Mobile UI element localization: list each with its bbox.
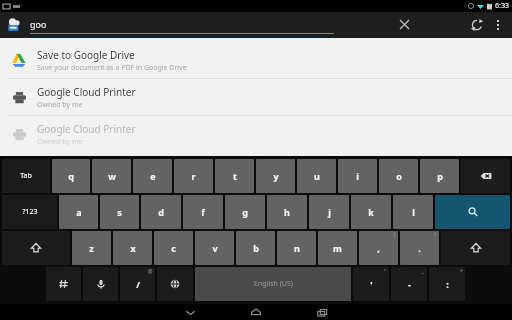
button[interactable]: ,	[359, 231, 398, 265]
button[interactable]: i	[338, 159, 377, 193]
staticText: d	[158, 206, 164, 218]
button[interactable]: e	[133, 159, 172, 193]
button[interactable]: n	[277, 231, 316, 265]
staticText: m	[333, 242, 342, 254]
button[interactable]: Shift	[2, 231, 70, 265]
button[interactable]: h	[267, 195, 307, 229]
button[interactable]: k	[351, 195, 391, 229]
button[interactable]: q	[52, 159, 90, 193]
button[interactable]: s	[100, 195, 139, 229]
button[interactable]: ?123	[2, 195, 57, 229]
staticText: Owned by me	[37, 137, 83, 147]
staticText: f	[201, 206, 205, 218]
button[interactable]: j	[309, 195, 349, 229]
button[interactable]: z	[72, 231, 111, 265]
button[interactable]: m	[318, 231, 357, 265]
staticText: ?	[434, 232, 437, 239]
staticText: +	[460, 268, 463, 275]
button[interactable]: t	[215, 159, 254, 193]
button[interactable]: u	[297, 159, 336, 193]
button[interactable]: Recent apps	[310, 304, 334, 320]
button[interactable]: Search	[435, 195, 510, 229]
staticText: _	[422, 268, 425, 275]
button[interactable]: w	[92, 159, 131, 193]
button[interactable]: Settings	[46, 267, 81, 301]
button[interactable]: r	[174, 159, 213, 193]
staticText: English (US)	[254, 279, 293, 289]
staticText: l	[412, 206, 415, 218]
button[interactable]: Google Cloud Printer	[0, 116, 512, 152]
button[interactable]: x	[113, 231, 152, 265]
staticText: Tab	[20, 171, 32, 181]
staticText: -	[408, 278, 411, 290]
staticText: n	[294, 242, 300, 254]
staticText: p	[437, 170, 443, 182]
staticText: j	[328, 206, 331, 218]
staticText: ,	[377, 242, 380, 254]
button[interactable]: English (US)	[195, 267, 351, 301]
staticText: y	[273, 170, 279, 182]
button[interactable]: Cloud Print	[2, 13, 26, 37]
staticText: c	[171, 242, 176, 254]
staticText: a	[76, 206, 82, 218]
staticText: :	[446, 278, 449, 290]
staticText: i	[356, 170, 359, 182]
staticText: Owned by me	[37, 100, 83, 110]
button[interactable]: Clear	[396, 16, 412, 32]
staticText: o	[396, 170, 402, 182]
staticText: e	[150, 170, 156, 182]
staticText: z	[89, 242, 94, 254]
staticText: Save your document as a PDF in Google Dr…	[37, 63, 187, 73]
staticText: @	[148, 268, 153, 275]
button[interactable]: Save to Google Drive	[0, 42, 512, 78]
button[interactable]: /	[120, 267, 155, 301]
staticText: 6:33	[495, 1, 509, 11]
staticText: Google Cloud Printer	[37, 122, 136, 136]
staticText: b	[253, 242, 259, 254]
button[interactable]: Refresh	[466, 14, 488, 36]
button[interactable]: y	[256, 159, 295, 193]
staticText: !	[394, 232, 396, 239]
button[interactable]: c	[154, 231, 193, 265]
staticText: u	[314, 170, 320, 182]
staticText: k	[368, 206, 374, 218]
staticText: /	[136, 278, 140, 290]
button[interactable]: l	[393, 195, 433, 229]
staticText: w	[108, 170, 116, 182]
button[interactable]: Shift	[441, 231, 510, 265]
staticText: r	[191, 170, 196, 182]
button[interactable]: Back	[178, 304, 202, 320]
button[interactable]: -	[391, 267, 427, 301]
button[interactable]: .	[400, 231, 439, 265]
staticText: t	[233, 170, 237, 182]
button[interactable]: Home	[244, 304, 268, 320]
staticText: q	[68, 170, 74, 182]
staticText: goo	[30, 18, 396, 30]
staticText: '	[370, 278, 373, 290]
button[interactable]: o	[379, 159, 418, 193]
button[interactable]: Google Cloud Printer	[0, 79, 512, 115]
button[interactable]: d	[141, 195, 181, 229]
staticText: h	[284, 206, 290, 218]
button[interactable]: :	[429, 267, 465, 301]
staticText: x	[130, 242, 136, 254]
button[interactable]: g	[225, 195, 265, 229]
staticText: "	[384, 268, 387, 275]
button[interactable]: Backspace	[461, 159, 510, 193]
button[interactable]: v	[195, 231, 234, 265]
staticText: s	[117, 206, 122, 218]
staticText: ?123	[22, 207, 38, 217]
button[interactable]: '	[353, 267, 389, 301]
button[interactable]: a	[59, 195, 98, 229]
staticText: g	[242, 206, 248, 218]
button[interactable]: Voice input	[83, 267, 118, 301]
button[interactable]: Tab	[2, 159, 50, 193]
button[interactable]: More options	[488, 15, 508, 35]
staticText: Save to Google Drive	[37, 48, 135, 62]
staticText: Google Cloud Printer	[37, 85, 136, 99]
staticText: v	[212, 242, 218, 254]
button[interactable]: f	[183, 195, 223, 229]
button[interactable]: b	[236, 231, 275, 265]
button[interactable]: Language	[157, 267, 193, 301]
button[interactable]: p	[420, 159, 459, 193]
